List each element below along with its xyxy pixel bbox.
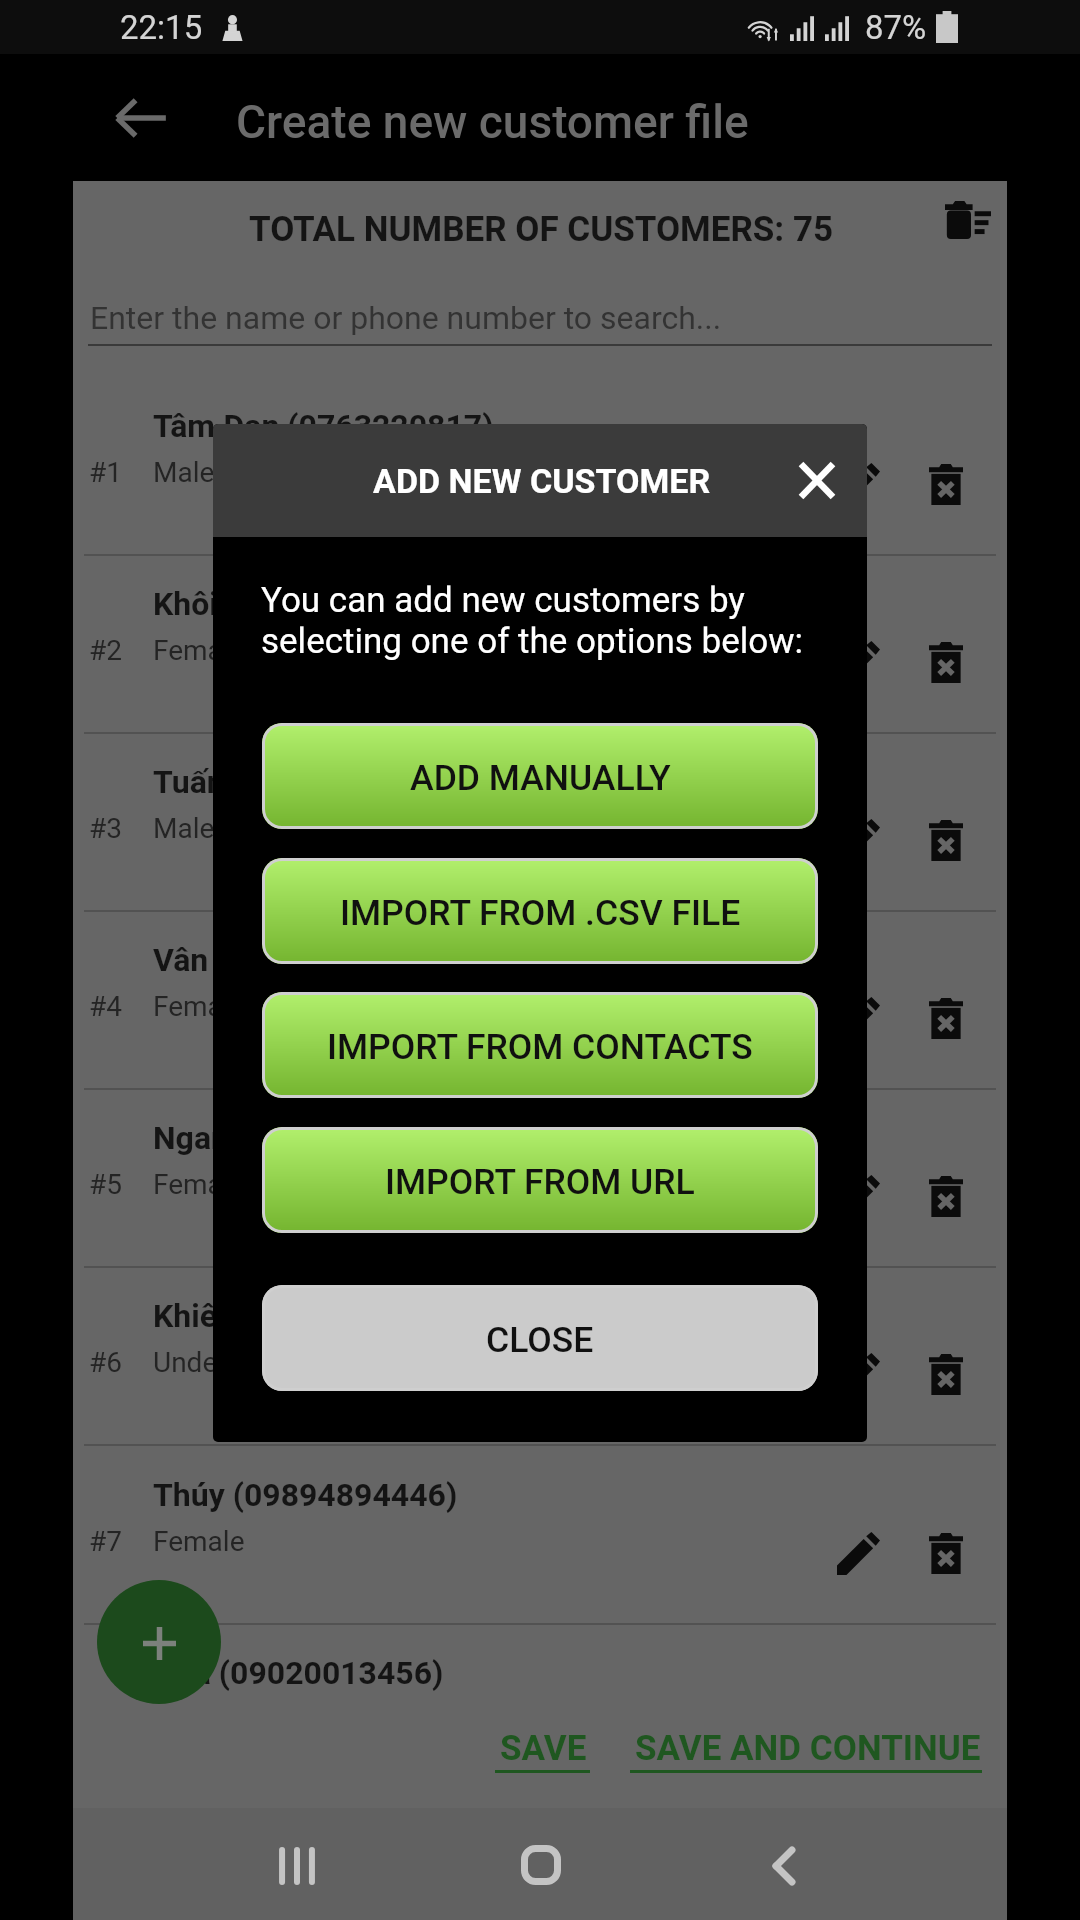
button[interactable]: Delete: [901, 973, 991, 1063]
staticText: Khiêm (0945678901): [153, 1297, 459, 1335]
button[interactable]: IMPORT FROM URL: [262, 1127, 818, 1233]
button[interactable]: SAVE AND CONTINUE: [625, 1728, 987, 1773]
staticText: CLOSE: [486, 1319, 594, 1361]
button[interactable]: SAVE: [490, 1728, 595, 1773]
staticText: Female: [153, 990, 245, 1023]
staticText: ADD MANUALLY: [410, 757, 671, 799]
staticText: #7: [89, 1525, 122, 1558]
button[interactable]: Delete: [901, 1329, 991, 1419]
staticText: 22:15: [120, 8, 203, 47]
staticText: #3: [89, 812, 122, 845]
staticText: 87%: [865, 8, 927, 47]
button[interactable]: IMPORT FROM CONTACTS: [262, 992, 818, 1098]
button[interactable]: Add customer: [97, 1580, 221, 1704]
button[interactable]: Delete: [901, 795, 991, 885]
staticText: #2: [89, 634, 122, 667]
button[interactable]: IMPORT FROM .CSV FILE: [262, 858, 818, 964]
button[interactable]: Edit: [813, 795, 903, 885]
staticText: IMPORT FROM .CSV FILE: [340, 892, 741, 934]
staticText: IMPORT FROM CONTACTS: [327, 1026, 753, 1068]
button[interactable]: Home: [487, 1811, 595, 1919]
staticText: Female: [153, 1168, 245, 1201]
staticText: Hoa (09020013456): [153, 1654, 444, 1692]
button[interactable]: Edit: [813, 1329, 903, 1419]
staticText: #5: [89, 1168, 122, 1201]
staticText: Female: [153, 634, 245, 667]
staticText: Enter the name or phone number to search…: [90, 299, 722, 337]
staticText: SAVE AND CONTINUE: [635, 1728, 981, 1769]
staticText: ADD NEW CUSTOMER: [373, 461, 711, 501]
staticText: SAVE: [500, 1728, 587, 1769]
staticText: You can add new customers by selecting o…: [261, 580, 804, 662]
staticText: IMPORT FROM URL: [385, 1161, 695, 1203]
button[interactable]: Edit: [813, 1151, 903, 1241]
button[interactable]: Edit: [813, 617, 903, 707]
staticText: #1: [89, 456, 122, 489]
staticText: TOTAL NUMBER OF CUSTOMERS: 75: [249, 209, 834, 250]
button[interactable]: Back: [93, 70, 189, 166]
button[interactable]: Back: [730, 1812, 838, 1920]
button[interactable]: Close dialog: [781, 444, 853, 516]
staticText: Khôi (0905512377): [153, 585, 432, 623]
staticText: Male: [153, 812, 215, 845]
button[interactable]: Delete: [901, 439, 991, 529]
staticText: Female: [153, 1525, 245, 1558]
button[interactable]: Edit: [813, 439, 903, 529]
staticText: #6: [89, 1346, 122, 1379]
staticText: Undefined: [153, 1346, 279, 1379]
button[interactable]: Recent apps: [244, 1813, 350, 1919]
button[interactable]: Delete: [901, 1151, 991, 1241]
staticText: #4: [89, 990, 122, 1023]
staticText: Create new customer file: [236, 95, 749, 149]
button[interactable]: Delete all customers: [922, 188, 1014, 251]
staticText: Tuấn (0912345678): [153, 763, 439, 801]
staticText: Thúy (09894894446): [153, 1476, 458, 1514]
button[interactable]: Delete: [901, 1508, 991, 1598]
staticText: Vân (0923456789): [153, 941, 423, 979]
button[interactable]: CLOSE: [262, 1285, 818, 1391]
staticText: Tâm Đan (0763220817): [153, 407, 494, 445]
staticText: Male: [153, 456, 215, 489]
button[interactable]: Edit: [813, 1508, 903, 1598]
staticText: Ngan (0934567890): [153, 1119, 444, 1157]
button[interactable]: Delete: [901, 617, 991, 707]
button[interactable]: ADD MANUALLY: [262, 723, 818, 829]
button[interactable]: Edit: [813, 973, 903, 1063]
